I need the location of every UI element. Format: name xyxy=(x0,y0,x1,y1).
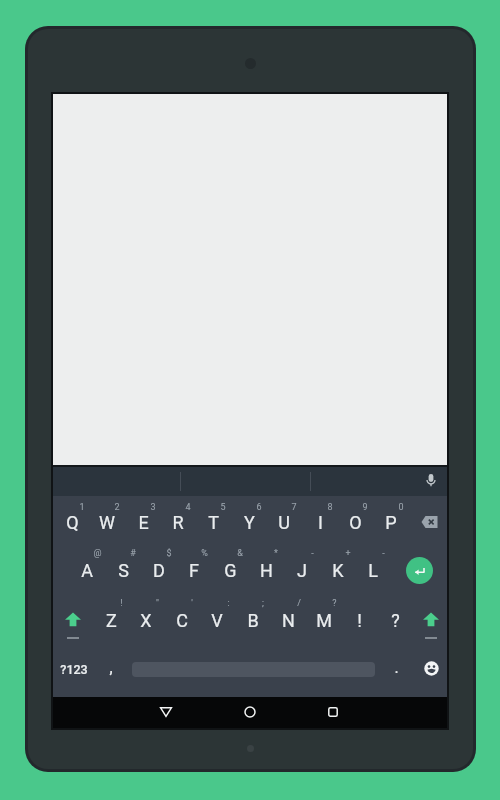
staticText: S xyxy=(118,560,129,581)
button[interactable] xyxy=(53,467,447,496)
staticText: X xyxy=(140,610,152,631)
button[interactable] xyxy=(93,596,128,644)
staticText: ? xyxy=(391,610,400,631)
staticText: P xyxy=(385,512,397,533)
staticText: + xyxy=(345,548,351,559)
staticText: ' xyxy=(191,598,193,609)
staticText: - xyxy=(382,548,385,559)
staticText: C xyxy=(176,610,188,631)
staticText: I xyxy=(318,512,323,533)
button[interactable] xyxy=(343,596,376,644)
button[interactable] xyxy=(69,546,104,594)
staticText: 9 xyxy=(362,502,368,513)
staticText: * xyxy=(274,548,278,559)
staticText: W xyxy=(99,512,115,533)
button[interactable] xyxy=(90,498,125,546)
staticText: Q xyxy=(66,512,79,533)
staticText: B xyxy=(247,610,259,631)
button[interactable] xyxy=(381,647,411,691)
button[interactable] xyxy=(378,596,411,644)
staticText: 0 xyxy=(398,502,404,513)
staticText: @ xyxy=(93,548,102,559)
staticText: Y xyxy=(244,512,255,533)
button[interactable] xyxy=(373,498,408,546)
staticText: R xyxy=(172,512,184,533)
staticText: K xyxy=(332,560,344,581)
staticText: & xyxy=(237,548,243,559)
staticText: D xyxy=(153,560,165,581)
staticText: E xyxy=(138,512,149,533)
button[interactable] xyxy=(356,546,391,594)
staticText: M xyxy=(316,610,332,631)
staticText: $ xyxy=(166,548,172,559)
staticText: 1 xyxy=(79,502,85,513)
button[interactable] xyxy=(141,546,176,594)
button[interactable] xyxy=(406,557,433,584)
button[interactable] xyxy=(96,647,126,691)
staticText: 2 xyxy=(114,502,120,513)
staticText: ?123 xyxy=(60,662,88,677)
staticText: V xyxy=(211,610,223,631)
staticText: U xyxy=(278,512,290,533)
staticText: ! xyxy=(357,610,362,631)
button[interactable] xyxy=(164,596,199,644)
button[interactable] xyxy=(105,546,140,594)
button[interactable] xyxy=(200,596,235,644)
staticText: H xyxy=(260,560,273,581)
button[interactable] xyxy=(235,596,270,644)
button[interactable] xyxy=(424,661,439,676)
staticText: ! xyxy=(120,598,123,609)
button[interactable] xyxy=(64,612,82,627)
button[interactable] xyxy=(177,546,212,594)
button[interactable] xyxy=(125,498,160,546)
staticText: 7 xyxy=(291,502,297,513)
button[interactable] xyxy=(231,498,266,546)
button[interactable] xyxy=(421,515,439,529)
staticText: O xyxy=(349,512,362,533)
staticText: 6 xyxy=(256,502,262,513)
staticText: . xyxy=(394,658,399,677)
button[interactable] xyxy=(248,546,283,594)
staticText: F xyxy=(189,560,199,581)
button[interactable] xyxy=(284,546,319,594)
staticText: / xyxy=(297,598,301,609)
staticText: 4 xyxy=(185,502,191,513)
staticText: A xyxy=(81,560,93,581)
button[interactable] xyxy=(320,546,355,594)
button[interactable] xyxy=(243,705,257,719)
staticText: Z xyxy=(106,610,117,631)
button[interactable] xyxy=(302,498,337,546)
button[interactable] xyxy=(271,596,306,644)
staticText: L xyxy=(368,560,378,581)
button[interactable] xyxy=(196,498,231,546)
staticText: ? xyxy=(332,598,337,609)
staticText: # xyxy=(130,548,136,559)
button[interactable] xyxy=(422,612,440,627)
button[interactable] xyxy=(213,546,248,594)
staticText: G xyxy=(224,560,237,581)
staticText: ; xyxy=(262,598,264,609)
button[interactable] xyxy=(158,705,174,719)
staticText: : xyxy=(227,598,230,609)
staticText: 5 xyxy=(220,502,226,513)
button[interactable] xyxy=(55,647,93,691)
staticText: , xyxy=(109,658,113,677)
button[interactable] xyxy=(423,473,439,489)
button[interactable] xyxy=(54,498,89,546)
staticText: " xyxy=(156,598,159,609)
staticText: J xyxy=(297,560,307,581)
button[interactable] xyxy=(160,498,195,546)
button[interactable] xyxy=(267,498,302,546)
staticText: 3 xyxy=(150,502,156,513)
button[interactable] xyxy=(306,596,341,644)
button[interactable] xyxy=(338,498,373,546)
staticText: % xyxy=(201,548,208,559)
button[interactable] xyxy=(129,596,164,644)
staticText: N xyxy=(282,610,295,631)
staticText: T xyxy=(208,512,219,533)
staticText: 8 xyxy=(327,502,333,513)
button[interactable] xyxy=(326,705,340,719)
staticText: - xyxy=(311,548,314,559)
